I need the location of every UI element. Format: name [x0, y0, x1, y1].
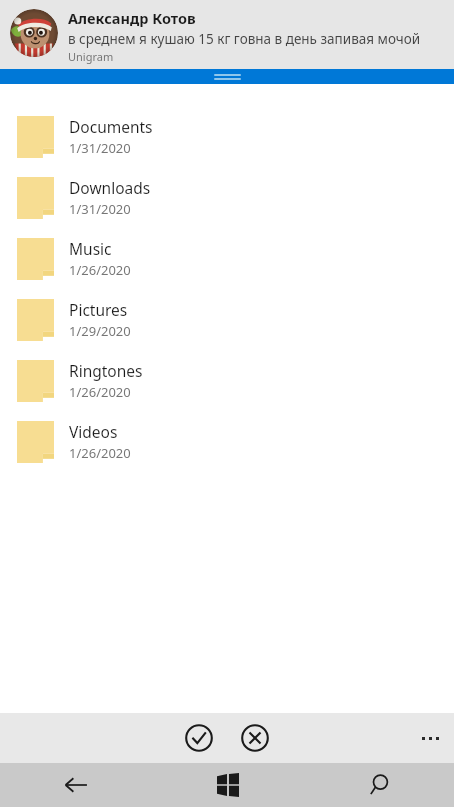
staticText: Name	[65, 65, 105, 84]
staticText: 1/26/2020	[69, 261, 131, 279]
staticText: в среднем я кушаю 15 кг говна в день зап…	[68, 30, 421, 48]
staticText: Ringtones	[69, 360, 143, 381]
staticText: Pictures	[69, 299, 128, 320]
button[interactable]: Start	[152, 763, 303, 807]
button[interactable]: Cancel	[233, 716, 277, 760]
button[interactable]: Videos	[0, 411, 454, 472]
button[interactable]: More options	[406, 713, 454, 763]
staticText: 1/26/2020	[69, 383, 131, 401]
button[interactable]: Pictures	[0, 289, 454, 350]
button[interactable]: Downloads	[0, 167, 454, 228]
staticText: 1/29/2020	[69, 322, 131, 340]
button[interactable]: Back	[0, 763, 152, 807]
button[interactable]: Accept	[177, 716, 221, 760]
staticText: Documents	[69, 116, 153, 137]
button[interactable]: Documents	[0, 106, 454, 167]
staticText: 1/31/2020	[69, 139, 131, 157]
staticText: Videos	[69, 421, 118, 442]
button[interactable]: Sort by:	[11, 65, 121, 84]
staticText: Unigram	[68, 49, 114, 64]
staticText: Александр Котов	[68, 8, 196, 28]
button[interactable]: Music	[0, 228, 454, 289]
staticText: 1/31/2020	[69, 200, 131, 218]
button[interactable]: Resize notification pane	[0, 69, 454, 84]
button[interactable]: Ringtones	[0, 350, 454, 411]
staticText: Sort by:	[11, 65, 65, 84]
staticText: 1/26/2020	[69, 444, 131, 462]
staticText: Music	[69, 238, 112, 259]
staticText: Downloads	[69, 177, 151, 198]
button[interactable]: Search	[303, 763, 454, 807]
button[interactable]: Александр Котов	[0, 0, 454, 69]
